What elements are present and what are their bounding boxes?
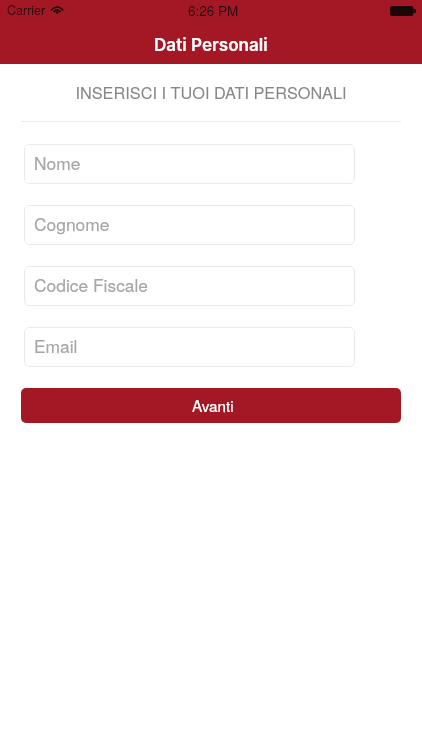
button[interactable]: Cognome <box>24 205 355 245</box>
staticText: Avanti <box>192 394 234 416</box>
staticText: INSERISCI I TUOI DATI PERSONALI <box>0 80 422 103</box>
staticText: Dati Personali <box>154 34 268 55</box>
staticText: Nome <box>34 150 81 175</box>
button[interactable]: Codice Fiscale <box>24 266 355 306</box>
staticText: Carrier <box>7 1 46 19</box>
staticText: 6:26 PM <box>188 1 239 20</box>
other: Battery full <box>390 6 416 16</box>
staticText: Codice Fiscale <box>34 272 149 297</box>
button[interactable]: Nome <box>24 144 355 184</box>
other: Wi-Fi signal <box>50 4 64 14</box>
staticText: Email <box>34 333 78 358</box>
button[interactable]: Avanti <box>21 388 401 423</box>
button[interactable]: Email <box>24 327 355 367</box>
staticText: Cognome <box>34 211 110 236</box>
